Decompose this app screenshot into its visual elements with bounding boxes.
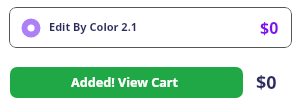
staticText: $0 [256,70,277,95]
button[interactable]: Added! View Cart [10,67,243,98]
other: Colour swatch [21,18,41,38]
staticText: Edit By Color 2.1 [49,19,138,34]
button[interactable]: Colour swatch [9,7,292,48]
staticText: Added! View Cart [71,74,178,91]
staticText: $0 [260,17,279,39]
